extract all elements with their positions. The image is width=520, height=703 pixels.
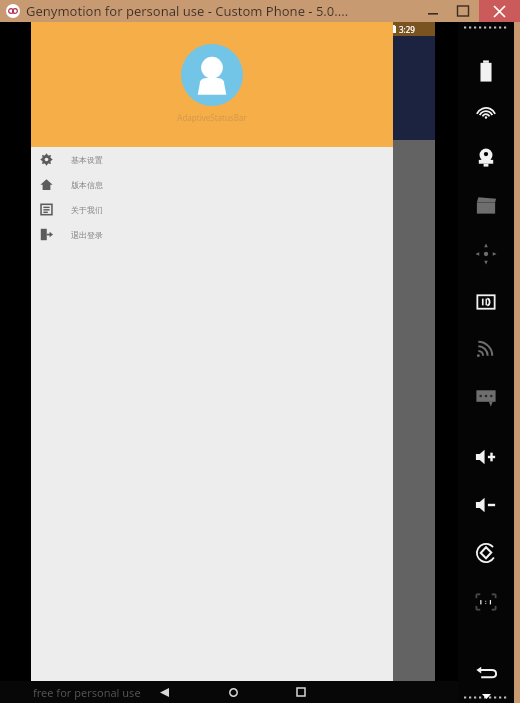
button[interactable]: Volume down — [467, 490, 505, 520]
button[interactable]: Back — [152, 681, 176, 703]
button[interactable]: Home — [221, 681, 245, 703]
button[interactable]: More — [476, 690, 496, 702]
button[interactable]: Actual size — [467, 587, 505, 617]
button[interactable]: Camera — [467, 142, 505, 172]
button[interactable]: Minimise — [420, 0, 446, 22]
button[interactable]: Battery — [467, 56, 505, 86]
button[interactable]: Back — [467, 657, 505, 687]
button[interactable]: Move — [467, 239, 505, 269]
button[interactable]: 基本设置 — [31, 147, 393, 172]
button[interactable]: Profile avatar — [181, 44, 243, 106]
button[interactable]: Recent apps — [289, 681, 313, 703]
staticText: free for personal use — [33, 685, 141, 700]
button[interactable]: 关于我们 — [31, 197, 393, 222]
staticText: Genymotion for personal use - Custom Pho… — [26, 2, 349, 20]
button[interactable]: Maximise — [450, 0, 476, 22]
staticText: 版本信息 — [71, 180, 103, 190]
button[interactable]: GPS — [467, 104, 505, 134]
button[interactable]: Close — [479, 0, 520, 22]
button[interactable]: Volume up — [467, 442, 505, 472]
staticText: 退出登录 — [71, 230, 103, 240]
staticText: 基本设置 — [71, 155, 103, 165]
button[interactable]: Messages — [467, 382, 505, 412]
button[interactable]: Video — [467, 190, 505, 220]
button[interactable]: 版本信息 — [31, 172, 393, 197]
button[interactable]: 退出登录 — [31, 222, 393, 247]
staticText: 关于我们 — [71, 205, 103, 215]
staticText: AdaptiveStatusBar — [177, 112, 247, 123]
button[interactable]: Network — [467, 333, 505, 363]
button[interactable]: Identifiers — [467, 287, 505, 317]
button[interactable]: Rotate — [467, 538, 505, 568]
staticText: 3:29 — [399, 24, 415, 35]
